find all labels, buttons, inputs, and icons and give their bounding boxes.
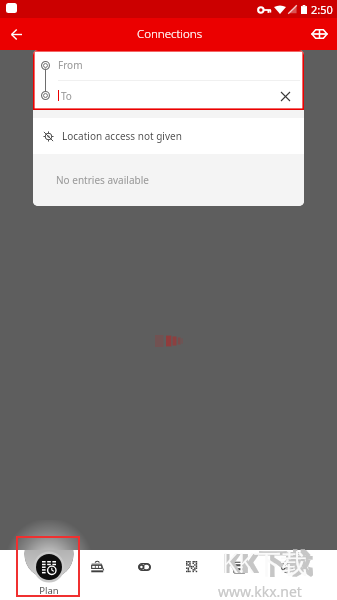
staticText: From xyxy=(58,58,83,72)
button[interactable]: Services xyxy=(121,552,168,582)
staticText: www.kkx.net xyxy=(218,582,302,600)
button[interactable]: Account xyxy=(263,552,310,582)
staticText: Plan xyxy=(34,584,64,597)
button[interactable]: Back xyxy=(0,18,32,50)
button[interactable]: Tickets xyxy=(168,552,215,582)
button[interactable]: Location access not given xyxy=(33,118,304,154)
staticText: Connections xyxy=(137,26,203,42)
staticText: 2:50 xyxy=(311,2,333,17)
staticText: KK下载 xyxy=(222,544,314,581)
button[interactable]: To xyxy=(33,81,304,110)
staticText: No entries available xyxy=(56,173,149,187)
button[interactable]: Departures xyxy=(74,552,121,582)
staticText: Location access not given xyxy=(62,129,182,143)
button[interactable]: From xyxy=(33,50,304,80)
button[interactable]: Clear destination xyxy=(273,84,297,108)
staticText: To xyxy=(61,89,72,103)
button[interactable]: SBB xyxy=(303,18,335,50)
button[interactable] xyxy=(36,554,62,580)
button[interactable]: Store xyxy=(216,552,263,582)
staticText: KK下载 xyxy=(222,544,308,581)
